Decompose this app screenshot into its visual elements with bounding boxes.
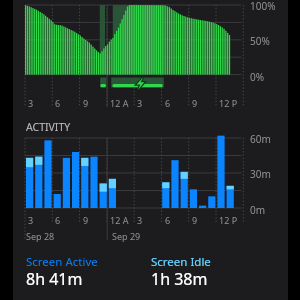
staticText: 1h 38m	[151, 268, 208, 290]
staticText: 3	[28, 97, 34, 109]
staticText: 6	[165, 214, 171, 226]
staticText: ACTIVITY	[26, 120, 71, 134]
staticText: Screen Idle	[151, 254, 211, 270]
staticText: Sep 29	[112, 230, 141, 242]
staticText: 12 A	[110, 97, 129, 109]
staticText: 9	[83, 214, 89, 226]
staticText: 6	[55, 97, 61, 109]
staticText: 30m	[250, 167, 271, 181]
staticText: 6	[165, 97, 171, 109]
staticText: Screen Active	[26, 254, 98, 270]
staticText: 3	[28, 214, 34, 226]
staticText: 6	[55, 214, 61, 226]
staticText: 3	[137, 97, 143, 109]
staticText: 0%	[250, 70, 265, 84]
staticText: Sep 28	[26, 230, 55, 242]
staticText: 50%	[250, 34, 270, 48]
staticText: 12 A	[110, 214, 129, 226]
staticText: 12 P	[219, 214, 238, 226]
staticText: 9	[192, 214, 198, 226]
staticText: 9	[192, 97, 198, 109]
staticText: 12 P	[219, 97, 238, 109]
staticText: 0m	[250, 203, 266, 217]
staticText: 60m	[250, 132, 271, 146]
staticText: 100%	[250, 0, 276, 13]
staticText: 9	[83, 97, 89, 109]
staticText: 8h 41m	[26, 268, 83, 290]
staticText: 3	[137, 214, 143, 226]
